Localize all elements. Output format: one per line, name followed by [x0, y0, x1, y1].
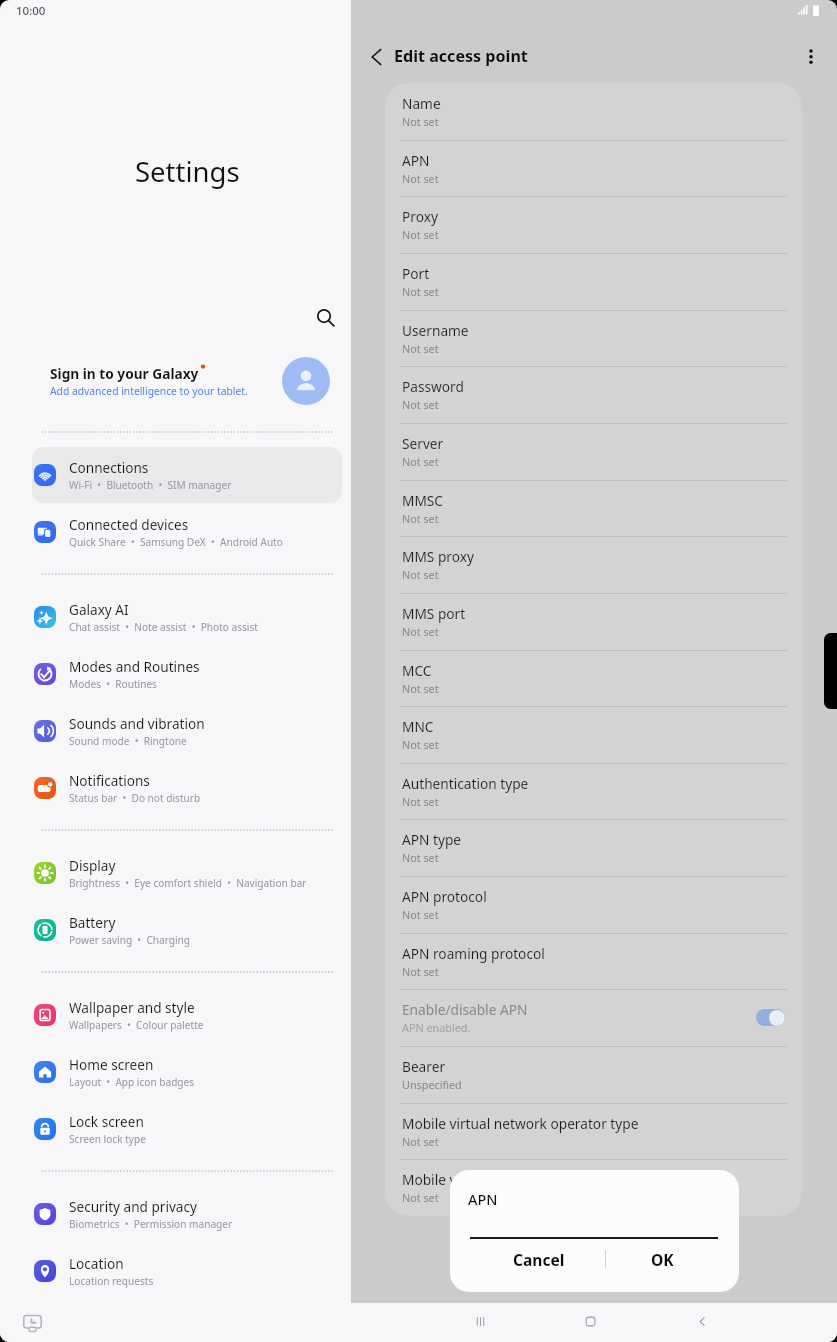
staticText: Not set	[402, 907, 439, 922]
button[interactable]: Search	[309, 302, 341, 334]
staticText: Sounds and vibration	[69, 714, 205, 733]
staticText: Connections	[69, 458, 149, 477]
staticText: APN protocol	[402, 887, 487, 906]
button[interactable]: Cancel	[481, 1241, 596, 1277]
button[interactable]: Mobile virtual network operator type	[385, 1103, 802, 1160]
button[interactable]: More options	[794, 40, 828, 74]
button[interactable]: Connections	[0, 446, 351, 503]
staticText: 10:00	[16, 3, 46, 19]
button[interactable]: Sounds and vibration	[0, 702, 351, 759]
button[interactable]: Home	[572, 1303, 608, 1339]
staticText: Modes and Routines	[69, 657, 200, 676]
button[interactable]: MMS proxy	[385, 536, 802, 593]
staticText: Not set	[402, 341, 439, 356]
button[interactable]: Wallpaper and style	[0, 986, 351, 1043]
button[interactable]: Enable APN	[756, 1009, 785, 1026]
staticText: Power saving • Charging	[69, 933, 191, 947]
staticText: Not set	[402, 511, 439, 526]
button[interactable]: Galaxy AI	[0, 588, 351, 645]
button[interactable]: Samsung DeX	[14, 1305, 50, 1341]
staticText: Mobile virtual network operator type	[402, 1114, 639, 1133]
staticText: Notifications	[69, 771, 150, 790]
staticText: Settings	[135, 153, 240, 190]
button[interactable]: Server	[385, 423, 802, 480]
button[interactable]: Back	[362, 40, 396, 74]
staticText: Sign in to your Galaxy	[50, 364, 199, 383]
staticText: Location	[69, 1254, 124, 1273]
button[interactable]: Location	[0, 1242, 351, 1299]
button[interactable]: Display	[0, 844, 351, 901]
button[interactable]: Notifications	[0, 759, 351, 816]
button[interactable]: MCC	[385, 650, 802, 707]
button[interactable]: Back	[684, 1303, 720, 1339]
staticText: APN	[402, 151, 430, 170]
button[interactable]: Home screen	[0, 1043, 351, 1100]
button[interactable]: Security and privacy	[0, 1185, 351, 1242]
staticText: Not set	[402, 114, 439, 129]
staticText: MMSC	[402, 491, 443, 510]
button[interactable]: APN protocol	[385, 876, 802, 933]
staticText: Bearer	[402, 1057, 446, 1076]
staticText: Display	[69, 856, 116, 875]
staticText: Edit access point	[394, 45, 528, 67]
staticText: Brightness • Eye comfort shield • Naviga…	[69, 876, 307, 890]
staticText: Security and privacy	[69, 1197, 197, 1216]
staticText: Port	[402, 264, 430, 283]
staticText: Not set	[402, 1190, 439, 1205]
button[interactable]: Bearer	[385, 1046, 802, 1103]
staticText: Username	[402, 321, 469, 340]
staticText: Not set	[402, 567, 439, 582]
staticText: Wi-Fi • Bluetooth • SIM manager	[69, 478, 232, 492]
button[interactable]: Enable/disable APN	[385, 989, 802, 1046]
button[interactable]: Sign in to your Galaxy	[0, 349, 351, 413]
button[interactable]: Battery	[0, 901, 351, 958]
button[interactable]: Modes and Routines	[0, 645, 351, 702]
button[interactable]: APN	[385, 140, 802, 197]
button[interactable]: OK	[606, 1241, 719, 1277]
staticText: APN roaming protocol	[402, 944, 545, 963]
staticText: Not set	[402, 227, 439, 242]
staticText: Battery	[69, 913, 116, 932]
staticText: Not set	[402, 964, 439, 979]
staticText: Modes • Routines	[69, 677, 157, 691]
staticText: Location requests	[69, 1274, 154, 1288]
staticText: Galaxy AI	[69, 600, 129, 619]
staticText: MNC	[402, 717, 434, 736]
staticText: Not set	[402, 850, 439, 865]
button[interactable]: Name	[385, 83, 802, 140]
staticText: Not set	[402, 624, 439, 639]
staticText: Layout • App icon badges	[69, 1075, 195, 1089]
button[interactable]: Password	[385, 366, 802, 423]
staticText: MMS proxy	[402, 547, 474, 566]
staticText: Connected devices	[69, 515, 189, 534]
button[interactable]: Lock screen	[0, 1100, 351, 1157]
staticText: Wallpaper and style	[69, 998, 195, 1017]
button[interactable]: Connected devices	[0, 503, 351, 560]
staticText: Not set	[402, 681, 439, 696]
button[interactable]: Port	[385, 253, 802, 310]
staticText: Status bar • Do not disturb	[69, 791, 201, 805]
staticText: Cancel	[513, 1249, 565, 1270]
button[interactable]: MNC	[385, 706, 802, 763]
staticText: Wallpapers • Colour palette	[69, 1018, 204, 1032]
button[interactable]: MMS port	[385, 593, 802, 650]
button[interactable]: Proxy	[385, 196, 802, 253]
button[interactable]: Username	[385, 310, 802, 367]
button[interactable]: APN type	[385, 819, 802, 876]
staticText: APN enabled.	[402, 1020, 471, 1035]
button[interactable]: Recents	[462, 1303, 498, 1339]
button[interactable]: Authentication type	[385, 763, 802, 820]
staticText: Enable/disable APN	[402, 1000, 528, 1019]
staticText: Name	[402, 94, 441, 113]
button[interactable]: APN roaming protocol	[385, 933, 802, 990]
staticText: Biometrics • Permission manager	[69, 1217, 233, 1231]
button[interactable]: Mobile virtual network operator value	[385, 1159, 802, 1216]
button[interactable]: MMSC	[385, 480, 802, 537]
staticText: Add advanced intelligence to your tablet…	[50, 384, 248, 398]
staticText: Not set	[402, 284, 439, 299]
staticText: Authentication type	[402, 774, 529, 793]
button[interactable]: Edge panel	[824, 633, 837, 709]
staticText: Mobile virtual network operator value	[402, 1170, 645, 1189]
staticText: Not set	[402, 737, 439, 752]
staticText: Quick Share • Samsung DeX • Android Auto	[69, 535, 283, 549]
